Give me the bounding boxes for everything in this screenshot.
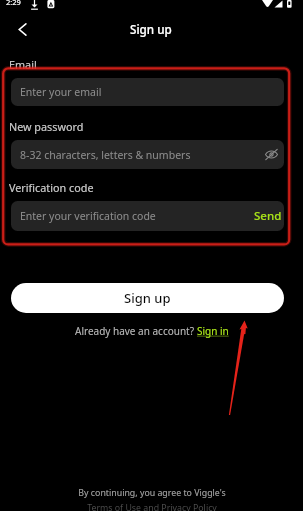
staticText: Sign up [130, 21, 172, 37]
button[interactable]: Sign in [197, 324, 229, 338]
staticText: Terms of Use and Privacy Policy [87, 502, 217, 511]
staticText: 8-32 characters, letters & numbers [20, 148, 191, 162]
staticText: By continuing, you agree to Viggle's [78, 487, 226, 499]
staticText: Enter your verification code [20, 209, 156, 223]
staticText: 2:29 [6, 0, 21, 7]
staticText: Sign up [124, 289, 171, 307]
button[interactable]: Show password [265, 148, 278, 161]
button[interactable]: 8-32 characters, letters & numbers [11, 140, 284, 169]
staticText: Email [9, 57, 37, 72]
button[interactable]: Enter your email [11, 78, 284, 106]
staticText: Send [254, 208, 282, 224]
button[interactable]: Back [9, 16, 35, 42]
staticText: New password [9, 119, 84, 134]
button[interactable]: Send [254, 208, 282, 224]
staticText: Already have an account? [75, 324, 197, 338]
button[interactable]: Enter your verification code [11, 201, 284, 231]
staticText: Verification code [9, 180, 94, 195]
staticText: Sign in [197, 324, 229, 338]
button[interactable]: Terms of Use and Privacy Policy [87, 502, 217, 511]
button[interactable]: Sign up [11, 283, 284, 313]
staticText: Enter your email [20, 85, 102, 99]
